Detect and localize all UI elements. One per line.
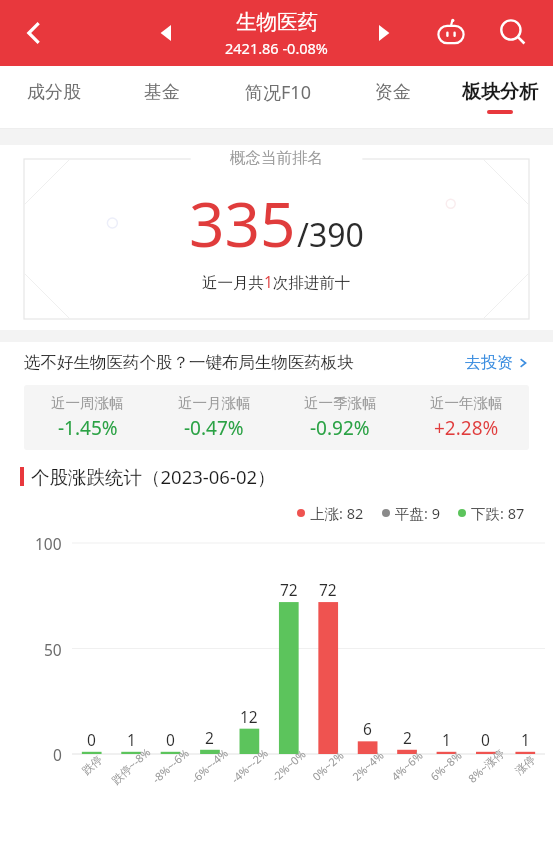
staticText: 近一月共1次排进前十 <box>202 271 351 292</box>
button[interactable]: Next sector <box>361 11 405 55</box>
button[interactable]: Previous sector <box>145 11 189 55</box>
button[interactable]: 成分股 <box>0 66 108 128</box>
staticText: -6%~-4% <box>188 745 231 786</box>
button[interactable]: 选不好生物医药个股？一键布局生物医药板块 <box>24 352 529 373</box>
staticText: 下跌: 87 <box>471 503 525 523</box>
staticText: 8%~涨停 <box>465 745 507 786</box>
staticText: 简况F10 <box>245 80 311 105</box>
staticText: 335 <box>189 181 296 265</box>
staticText: 2421.86 -0.08% <box>225 38 328 58</box>
staticText: 成分股 <box>27 81 81 104</box>
staticText: 资金 <box>375 81 411 104</box>
staticText: 72 <box>280 579 298 600</box>
button[interactable]: 资金 <box>339 66 446 128</box>
staticText: 50 <box>44 639 62 660</box>
staticText: 0 <box>87 729 96 750</box>
staticText: 板块分析 <box>462 80 538 104</box>
staticText: 基金 <box>144 81 180 104</box>
staticText: 概念当前排名 <box>230 148 323 168</box>
button[interactable]: Back <box>8 7 60 59</box>
staticText: -8%~-6% <box>149 745 192 786</box>
staticText: 生物医药 <box>236 9 318 35</box>
staticText: +2.28% <box>434 415 499 441</box>
staticText: 跌停 <box>79 752 105 777</box>
staticText: 2%~4% <box>349 747 387 784</box>
staticText: 1 <box>127 729 136 750</box>
staticText: -0.92% <box>310 415 370 441</box>
button[interactable]: Search <box>489 9 537 57</box>
staticText: 0%~2% <box>309 747 347 784</box>
staticText: 近一季涨幅 <box>304 394 377 412</box>
staticText: -1.45% <box>58 415 118 441</box>
staticText: 72 <box>319 579 337 600</box>
button[interactable]: 板块分析 <box>446 66 553 128</box>
staticText: 6 <box>363 718 372 739</box>
staticText: 100 <box>35 533 62 554</box>
staticText: 跌停~-8% <box>108 744 154 787</box>
staticText: 选不好生物医药个股？一键布局生物医药板块 <box>24 352 354 373</box>
staticText: 2 <box>403 727 412 748</box>
staticText: -2%~0% <box>268 746 309 785</box>
staticText: 去投资 <box>465 353 513 373</box>
button[interactable]: AI assistant <box>427 9 475 57</box>
staticText: 0 <box>53 744 62 765</box>
staticText: 6%~8% <box>427 747 465 784</box>
staticText: 上涨: 82 <box>310 503 364 523</box>
staticText: 4%~6% <box>388 747 426 784</box>
staticText: 1 <box>521 729 530 750</box>
staticText: 1 <box>442 729 451 750</box>
staticText: 个股涨跌统计（2023-06-02） <box>31 464 276 489</box>
staticText: 近一月涨幅 <box>178 394 251 412</box>
button[interactable]: 基金 <box>108 66 216 128</box>
button[interactable]: 简况F10 <box>216 66 339 128</box>
staticText: 涨停 <box>512 752 538 777</box>
staticText: /390 <box>297 213 364 257</box>
staticText: -0.47% <box>184 415 244 441</box>
staticText: 2 <box>205 727 214 748</box>
staticText: 近一周涨幅 <box>51 394 124 412</box>
staticText: 0 <box>166 729 175 750</box>
staticText: 平盘: 9 <box>395 503 440 523</box>
staticText: -4%~-2% <box>228 745 271 786</box>
staticText: 0 <box>481 729 490 750</box>
staticText: 近一年涨幅 <box>430 394 503 412</box>
staticText: 12 <box>240 706 258 727</box>
